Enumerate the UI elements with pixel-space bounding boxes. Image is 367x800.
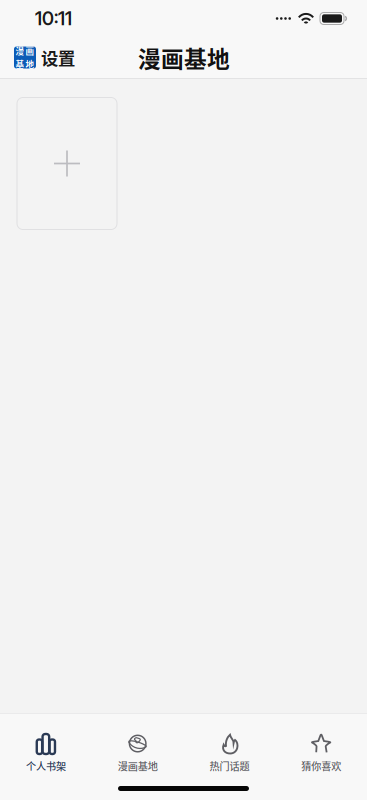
button[interactable]: 漫 <box>14 37 81 78</box>
button[interactable]: 热门话题 <box>183 733 275 773</box>
staticText: 个人书架 <box>26 758 66 773</box>
button[interactable]: 个人书架 <box>0 733 92 773</box>
button[interactable]: 漫画基地 <box>92 733 184 773</box>
staticText: 漫画基地 <box>138 41 230 74</box>
staticText: 地 <box>25 58 34 70</box>
staticText: 猜你喜欢 <box>301 758 341 773</box>
staticText: 热门话题 <box>209 758 249 773</box>
staticText: 设置 <box>41 45 75 70</box>
staticText: 画 <box>25 45 34 57</box>
button[interactable]: 猜你喜欢 <box>275 733 367 773</box>
button[interactable]: Add comic <box>17 97 117 229</box>
staticText: 漫画基地 <box>118 758 158 773</box>
staticText: 10:11 <box>35 7 72 30</box>
staticText: 漫 <box>15 45 24 57</box>
staticText: 基 <box>15 58 24 70</box>
